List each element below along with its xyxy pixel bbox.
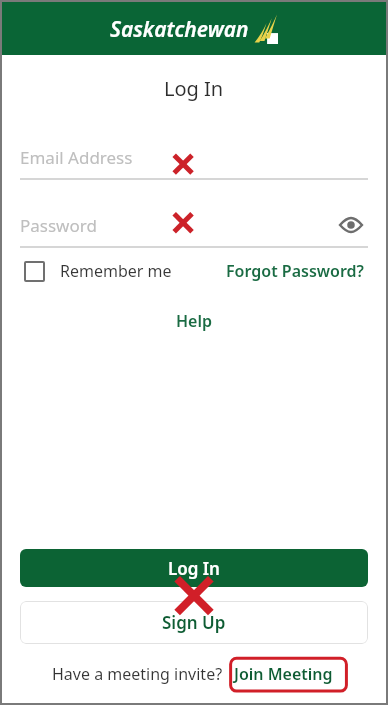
staticText: Join Meeting [234, 663, 333, 685]
button[interactable]: Email Address [20, 140, 368, 180]
button[interactable]: Forgot Password? [226, 260, 364, 282]
staticText: Log In [164, 75, 224, 102]
button[interactable]: Help [168, 308, 221, 334]
staticText: Remember me [60, 260, 172, 282]
button[interactable]: Join Meeting [231, 661, 336, 687]
button[interactable]: Password [20, 208, 368, 248]
staticText: Log In [168, 557, 220, 580]
button[interactable]: Show password [334, 208, 368, 242]
button[interactable]: Remember me [24, 260, 172, 282]
staticText: Email Address [20, 146, 133, 169]
staticText: Saskatchewan [110, 15, 249, 44]
staticText: Sign Up [162, 611, 226, 634]
staticText: Help [176, 310, 213, 332]
staticText: Forgot Password? [226, 260, 364, 282]
button[interactable]: Sign Up [20, 601, 368, 644]
button[interactable]: Log In [20, 549, 368, 587]
staticText: Password [20, 214, 97, 237]
staticText: Have a meeting invite? [52, 663, 223, 685]
